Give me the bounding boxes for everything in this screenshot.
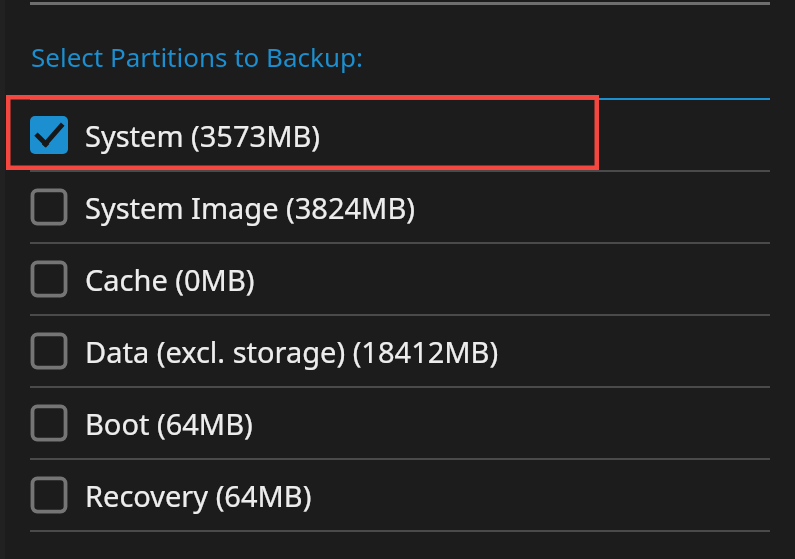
other: Highlighted System partition row xyxy=(6,95,599,170)
staticText: Boot (64MB) xyxy=(85,404,253,443)
staticText: Data (excl. storage) (18412MB) xyxy=(85,332,499,371)
staticText: Select Partitions to Backup: xyxy=(31,39,363,74)
button[interactable]: Recovery (64MB) xyxy=(0,460,795,530)
button[interactable]: Boot (64MB) xyxy=(0,388,795,458)
button[interactable]: Cache (0MB) xyxy=(0,244,795,314)
staticText: Recovery (64MB) xyxy=(85,476,312,515)
button[interactable]: System Image (3824MB) xyxy=(0,172,795,242)
button[interactable]: System (3573MB) xyxy=(0,100,795,170)
staticText: System (3573MB) xyxy=(85,116,320,155)
staticText: Cache (0MB) xyxy=(85,260,255,299)
button[interactable]: Data (excl. storage) (18412MB) xyxy=(0,316,795,386)
staticText: System Image (3824MB) xyxy=(85,188,415,227)
